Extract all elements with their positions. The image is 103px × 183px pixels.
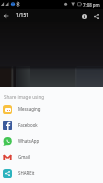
button[interactable]: Share: [90, 10, 102, 22]
staticText: Share image using: [4, 94, 45, 100]
staticText: Facebook: [18, 122, 38, 128]
staticText: 1/151: [16, 12, 30, 19]
button[interactable]: Details: [78, 10, 90, 22]
staticText: 7:08 pm: [83, 2, 100, 8]
staticText: SHAREit: [18, 170, 35, 176]
staticText: Gmail: [18, 154, 31, 160]
button[interactable]: Facebook: [0, 117, 103, 133]
staticText: WhatsApp: [18, 138, 40, 144]
button[interactable]: Messaging: [0, 101, 103, 117]
button[interactable]: SHAREit: [0, 165, 103, 181]
staticText: Messaging: [18, 106, 41, 112]
button[interactable]: Back: [0, 10, 12, 22]
button[interactable]: WhatsApp: [0, 133, 103, 149]
button[interactable]: Gmail: [0, 149, 103, 165]
